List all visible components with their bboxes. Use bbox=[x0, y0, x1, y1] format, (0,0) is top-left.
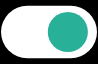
button[interactable]: Toggle switch, on bbox=[0, 0, 98, 64]
